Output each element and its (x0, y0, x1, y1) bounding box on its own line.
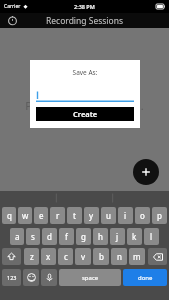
button[interactable]: g (76, 228, 91, 245)
button[interactable]: h (93, 228, 108, 245)
button[interactable]: done (123, 269, 167, 286)
staticText: b (99, 251, 104, 262)
staticText: t (73, 210, 76, 221)
staticText: s (31, 231, 35, 242)
button[interactable]: n (111, 248, 127, 265)
staticText: i (124, 210, 127, 221)
staticText: v (81, 251, 86, 262)
button[interactable]: r (50, 207, 65, 224)
button[interactable]: f (59, 228, 74, 245)
staticText: o (140, 210, 145, 221)
button[interactable]: 123 (2, 269, 21, 286)
button[interactable]: m (129, 248, 145, 265)
staticText: m (133, 251, 141, 262)
button[interactable]: Backspace (148, 248, 167, 265)
staticText: k (132, 231, 137, 242)
staticText: z (30, 251, 34, 262)
button[interactable]: c (58, 248, 73, 265)
button[interactable]: p (152, 207, 167, 224)
staticText: 2:38 PM (74, 3, 95, 10)
staticText: space (82, 274, 99, 282)
staticText: j (116, 231, 119, 242)
staticText: c (64, 251, 68, 262)
button[interactable]: y (84, 207, 99, 224)
button[interactable]: v (75, 248, 91, 265)
staticText: Press + to create them. (0, 98, 169, 113)
button[interactable]: b (93, 248, 109, 265)
button[interactable]: space (59, 269, 121, 286)
button[interactable]: Shift (2, 248, 21, 265)
button[interactable]: k (127, 228, 142, 245)
button[interactable]: Create (36, 107, 134, 121)
button[interactable]: e (34, 207, 48, 224)
staticText: n (117, 251, 122, 262)
staticText: Create (73, 109, 98, 119)
staticText: 123 (7, 274, 17, 281)
staticText: f (65, 231, 68, 242)
button[interactable]: t (67, 207, 82, 224)
staticText: g (81, 231, 86, 242)
staticText: e (39, 210, 44, 221)
button[interactable]: Add recording session (133, 159, 159, 185)
button[interactable]: x (41, 248, 56, 265)
button[interactable]: j (110, 228, 125, 245)
staticText: Recording Sessions (46, 15, 124, 27)
staticText: a (15, 231, 20, 242)
button[interactable]: z (24, 248, 39, 265)
staticText: q (7, 210, 12, 221)
button[interactable]: d (42, 228, 57, 245)
staticText: x (46, 251, 51, 262)
button[interactable]: Dictation (41, 269, 57, 286)
button[interactable]: u (101, 207, 116, 224)
staticText: done (138, 274, 153, 282)
button[interactable]: w (18, 207, 32, 224)
button[interactable]: Emoji (23, 269, 39, 286)
button[interactable]: Name field (36, 90, 134, 102)
staticText: d (47, 231, 52, 242)
staticText: Carrier (4, 3, 21, 10)
staticText: w (22, 210, 29, 221)
button[interactable]: q (2, 207, 16, 224)
staticText: r (56, 210, 60, 221)
staticText: p (157, 210, 162, 221)
staticText: l (150, 231, 153, 242)
staticText: y (89, 210, 94, 221)
staticText: h (98, 231, 103, 242)
staticText: Save As: (36, 68, 134, 77)
button[interactable]: s (26, 228, 40, 245)
button[interactable]: a (10, 228, 24, 245)
button[interactable]: Timer (7, 15, 18, 26)
button[interactable]: l (144, 228, 159, 245)
button[interactable]: o (135, 207, 150, 224)
staticText: u (106, 210, 111, 221)
button[interactable]: i (118, 207, 133, 224)
